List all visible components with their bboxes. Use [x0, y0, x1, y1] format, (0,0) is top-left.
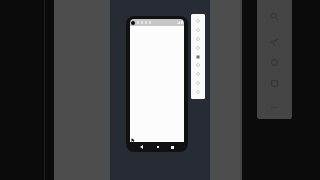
- button[interactable]: Recents: [169, 143, 176, 151]
- button[interactable]: Palette tool 4: [191, 53, 205, 61]
- button[interactable]: Palette tool 1: [191, 26, 205, 34]
- button[interactable]: Palette tool 6: [191, 70, 205, 78]
- button[interactable]: Phone preview: [126, 16, 188, 152]
- button[interactable]: Palette tool 2: [191, 35, 205, 43]
- button[interactable]: Home: [154, 143, 161, 151]
- button[interactable]: Palette tool 7: [191, 79, 205, 87]
- button[interactable]: Palette tool 3: [191, 44, 205, 52]
- button[interactable]: Palette tool 5: [191, 61, 205, 69]
- button[interactable]: Palette tool 0: [191, 17, 205, 25]
- button[interactable]: Back: [138, 143, 145, 151]
- button[interactable]: Palette tool 8: [191, 88, 205, 96]
